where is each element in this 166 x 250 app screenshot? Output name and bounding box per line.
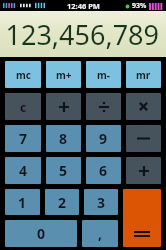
button[interactable]: 0 [5, 220, 77, 247]
button[interactable]: Clear [5, 93, 41, 120]
button[interactable]: 8 [46, 125, 81, 152]
button[interactable]: 2 [45, 189, 79, 215]
staticText: 9 [99, 129, 108, 148]
staticText: 3 [97, 193, 106, 212]
staticText: 2 [58, 193, 67, 212]
staticText: 8 [59, 129, 68, 148]
staticText: 93% [132, 1, 147, 11]
staticText: 7 [19, 129, 28, 148]
button[interactable]: 7 [5, 125, 41, 152]
staticText: mr [136, 68, 151, 82]
staticText: mc [16, 68, 31, 82]
button[interactable]: Plus [126, 157, 161, 184]
button[interactable]: mr [126, 61, 161, 88]
staticText: 5 [59, 161, 68, 180]
button[interactable]: m+ [46, 61, 81, 88]
staticText: 123,456,789 [5, 16, 159, 53]
button[interactable]: 5 [46, 157, 81, 184]
button[interactable]: Divide [86, 93, 121, 120]
button[interactable]: 3 [84, 189, 118, 215]
button[interactable]: , [82, 220, 118, 247]
button[interactable]: 9 [86, 125, 121, 152]
button[interactable]: Multiply [126, 93, 161, 120]
button[interactable]: 4 [5, 157, 41, 184]
staticText: 12:46 PM [67, 1, 100, 11]
button[interactable]: m- [86, 61, 121, 88]
button[interactable]: 1 [5, 189, 40, 215]
staticText: 0 [37, 224, 46, 243]
button[interactable]: mc [5, 61, 41, 88]
staticText: 6 [99, 161, 108, 180]
button[interactable]: Plus minus [46, 93, 81, 120]
staticText: m- [97, 68, 110, 82]
button[interactable]: Equals [123, 189, 161, 247]
staticText: m+ [56, 68, 72, 82]
staticText: , [98, 224, 102, 243]
staticText: c [20, 99, 27, 115]
staticText: 1 [18, 193, 27, 212]
staticText: 4 [19, 161, 28, 180]
button[interactable]: Minus [126, 125, 161, 152]
button[interactable]: 6 [86, 157, 121, 184]
